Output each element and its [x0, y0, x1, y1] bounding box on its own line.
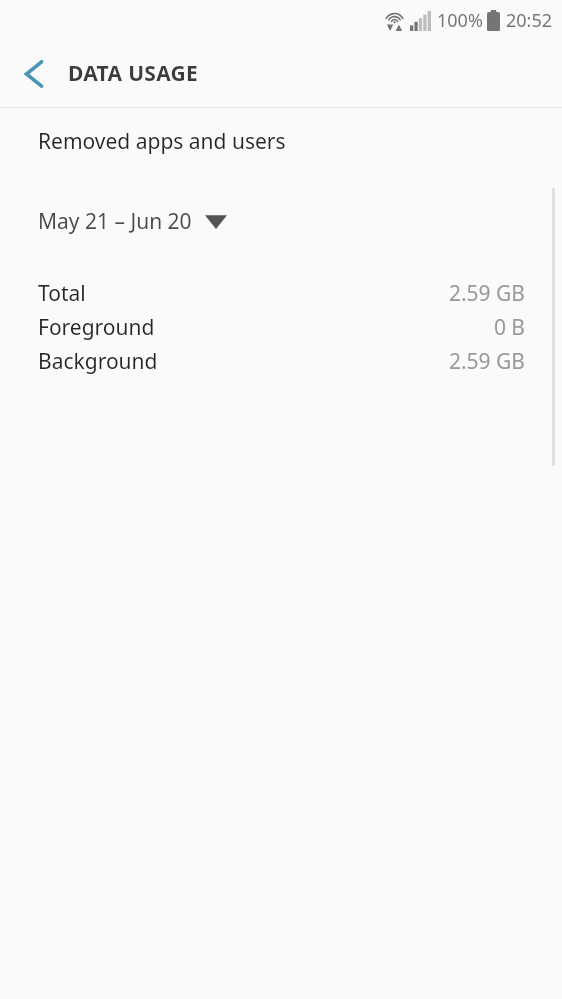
staticText: Total — [38, 279, 86, 308]
staticText: May 21 – Jun 20 — [38, 207, 192, 236]
staticText: 2.59 GB — [448, 279, 525, 308]
staticText: Background — [38, 347, 158, 376]
button[interactable]: Foreground — [0, 310, 562, 344]
button[interactable]: May 21 – Jun 20 — [38, 200, 227, 242]
staticText: 0 B — [493, 313, 525, 342]
staticText: Foreground — [38, 313, 155, 342]
button[interactable]: Navigate up — [10, 50, 58, 98]
staticText: 2.59 GB — [448, 347, 525, 376]
staticText: 20:52 — [506, 8, 553, 33]
button[interactable]: Total — [0, 276, 562, 310]
button[interactable]: Background — [0, 344, 562, 378]
staticText: 100% — [437, 8, 483, 33]
staticText: DATA USAGE — [68, 59, 199, 88]
staticText: Removed apps and users — [38, 127, 286, 156]
